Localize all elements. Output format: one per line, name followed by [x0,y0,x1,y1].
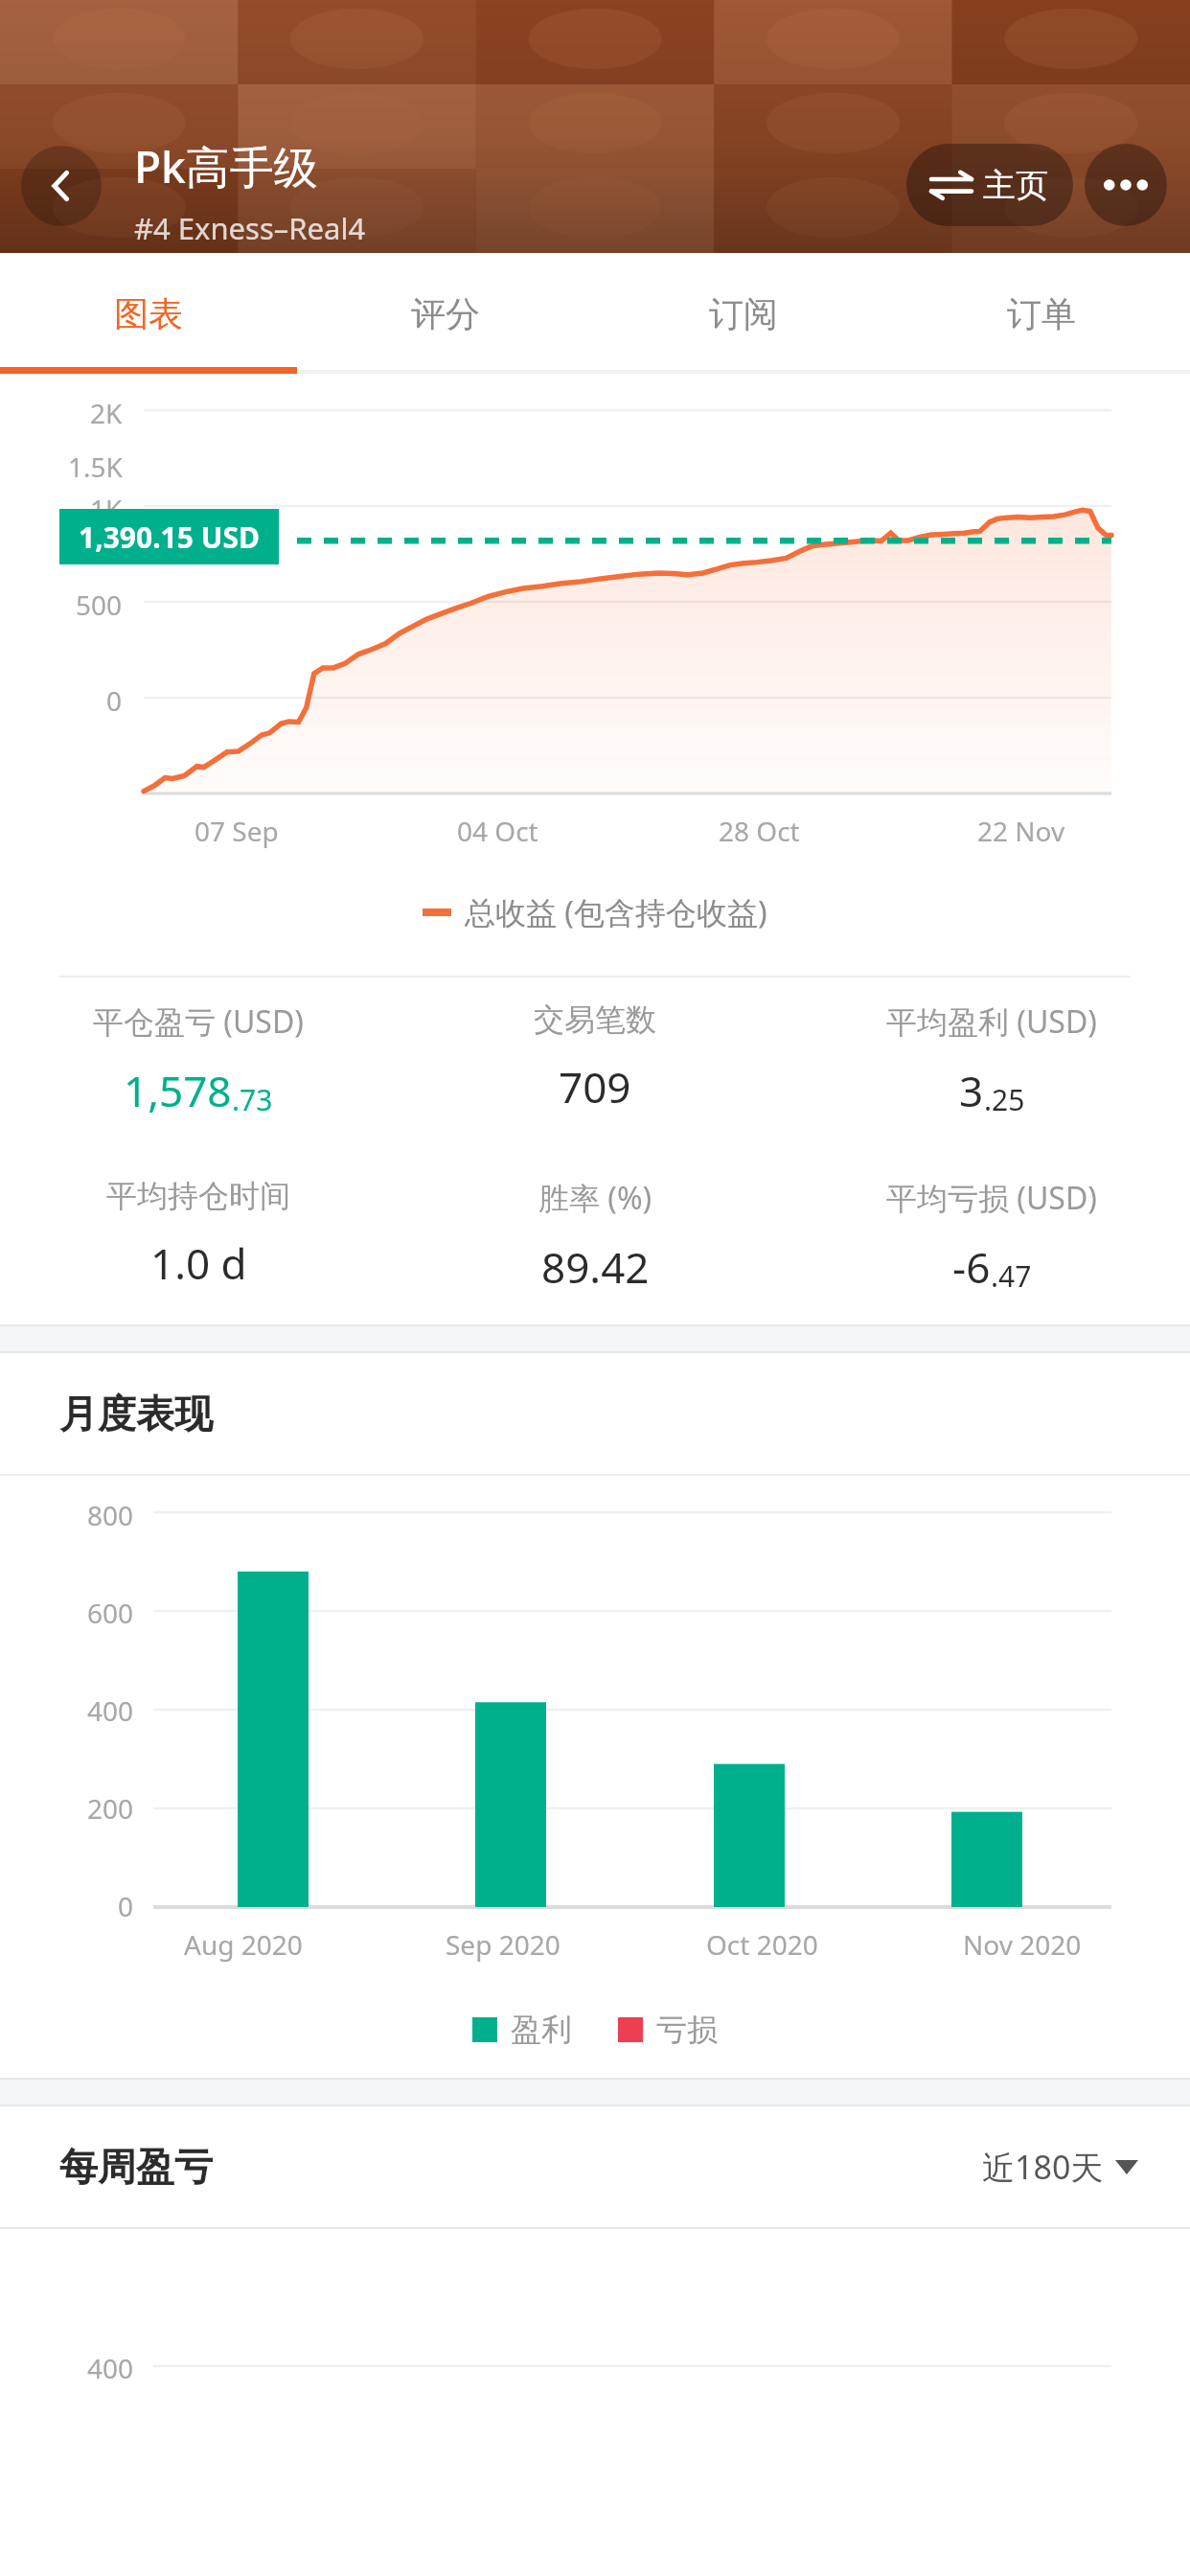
staticText: 胜率 (%) [538,1177,652,1219]
staticText: 400 [87,2350,134,2386]
staticText: 近180天 [982,2145,1104,2189]
staticText: Nov 2020 [963,1926,1082,1963]
staticText: .73 [232,1080,273,1119]
staticText: 2K [90,395,123,431]
staticText: 1,390.15 USD [79,517,260,557]
staticText: -6 [952,1238,991,1296]
button[interactable]: 近180天 [959,2129,1190,2204]
staticText: 1.5K [68,448,123,485]
staticText: 600 [87,1595,134,1631]
staticText: 1.0 d [150,1234,247,1292]
staticText: 0 [106,682,123,719]
staticText: 交易笔数 [534,1000,656,1039]
staticText: 04 Oct [457,813,538,849]
staticText: 平均亏损 (USD) [886,1177,1097,1219]
button[interactable]: 交易笔数 [397,995,793,1121]
staticText: .47 [991,1256,1032,1296]
staticText: 800 [87,1497,134,1533]
staticText: 亏损 [656,2011,718,2049]
button[interactable]: 主页 [906,144,1073,226]
staticText: 07 Sep [195,813,279,849]
button[interactable]: 平均亏损 (USD) [793,1171,1190,1301]
button[interactable]: 图表 [0,253,297,374]
staticText: .25 [984,1080,1025,1119]
staticText: 1,578 [124,1062,232,1119]
staticText: #4 Exness–Real4 [134,208,366,248]
staticText: 22 Nov [977,813,1065,849]
staticText: 图表 [114,292,183,335]
staticText: 每周盈亏 [59,2143,213,2191]
staticText: 盈利 [511,2011,572,2049]
button[interactable]: 订单 [892,253,1190,374]
staticText: 主页 [983,165,1048,206]
staticText: 89.42 [541,1238,650,1296]
button[interactable]: 月度表现 [0,1353,1190,1474]
staticText: 平均盈利 (USD) [886,1000,1097,1043]
staticText: 平均持仓时间 [106,1177,290,1215]
staticText: 200 [87,1790,134,1827]
button[interactable]: 订阅 [594,253,892,374]
staticText: Sep 2020 [446,1926,561,1963]
button[interactable]: 胜率 (%) [397,1171,793,1301]
staticText: 28 Oct [719,813,800,849]
staticText: Aug 2020 [184,1926,303,1963]
staticText: 0 [118,1888,134,1924]
staticText: 平仓盈亏 (USD) [93,1000,304,1043]
staticText: 1K [90,491,123,527]
staticText: Oct 2020 [706,1926,818,1963]
staticText: 评分 [411,292,480,335]
button[interactable]: 平均持仓时间 [0,1171,397,1298]
button[interactable]: 评分 [297,253,594,374]
staticText: 订阅 [709,292,778,335]
staticText: 709 [559,1058,631,1115]
staticText: 500 [76,586,123,623]
staticText: 月度表现 [59,1390,213,1437]
button[interactable]: 平均盈利 (USD) [793,995,1190,1125]
button[interactable]: Back [21,146,102,226]
staticText: 总收益 (包含持仓收益) [465,891,767,933]
staticText: 订单 [1007,292,1076,335]
button[interactable]: 平仓盈亏 (USD) [0,995,397,1125]
button[interactable]: More options [1085,144,1167,226]
staticText: 400 [87,1692,134,1729]
staticText: Pk高手级 [134,136,318,196]
staticText: 3 [959,1062,984,1119]
